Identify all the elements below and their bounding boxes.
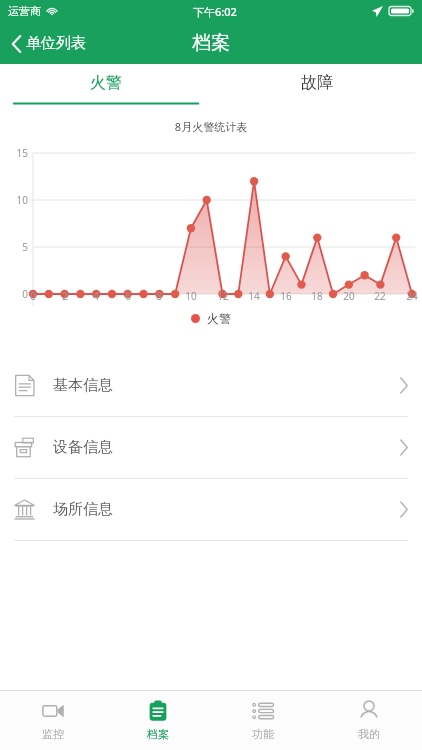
staticText: 0	[23, 289, 43, 303]
staticText: 22	[370, 289, 390, 303]
staticText: 功能	[252, 727, 274, 741]
button[interactable]: 设备信息	[0, 417, 422, 478]
staticText: 2	[55, 289, 75, 303]
staticText: 14	[244, 289, 264, 303]
staticText: 12	[213, 289, 233, 303]
button[interactable]: 基本信息	[0, 355, 422, 416]
staticText: 24	[402, 289, 422, 303]
staticText: 0	[6, 287, 28, 301]
staticText: 火警	[207, 311, 231, 326]
staticText: 20	[339, 289, 359, 303]
staticText: 档案	[147, 727, 169, 741]
staticText: 4	[86, 289, 106, 303]
staticText: 运营商	[8, 4, 41, 18]
staticText: 15	[6, 146, 28, 160]
button[interactable]: 场所信息	[0, 479, 422, 540]
staticText: 场所信息	[53, 500, 113, 519]
button[interactable]: 故障	[211, 64, 422, 102]
button[interactable]: 单位列表	[0, 28, 100, 59]
staticText: 下午6:02	[193, 4, 237, 19]
button[interactable]: 我的	[316, 691, 422, 750]
staticText: 5	[6, 240, 28, 254]
staticText: 火警	[90, 73, 122, 93]
staticText: 10	[181, 289, 201, 303]
staticText: 故障	[301, 73, 333, 93]
button[interactable]: 监控	[0, 691, 105, 750]
staticText: 单位列表	[26, 34, 86, 53]
staticText: 档案	[192, 31, 230, 55]
staticText: 我的	[358, 727, 380, 741]
staticText: 监控	[42, 727, 64, 741]
staticText: 6	[118, 289, 138, 303]
staticText: 基本信息	[53, 376, 113, 395]
button[interactable]: 档案	[105, 691, 210, 750]
staticText: 18	[307, 289, 327, 303]
staticText: 16	[276, 289, 296, 303]
button[interactable]: 火警	[0, 64, 211, 102]
staticText: 8月火警统计表	[0, 119, 422, 134]
staticText: 10	[6, 193, 28, 207]
staticText: 8	[149, 289, 169, 303]
staticText: 设备信息	[53, 438, 113, 457]
button[interactable]: 功能	[210, 691, 316, 750]
